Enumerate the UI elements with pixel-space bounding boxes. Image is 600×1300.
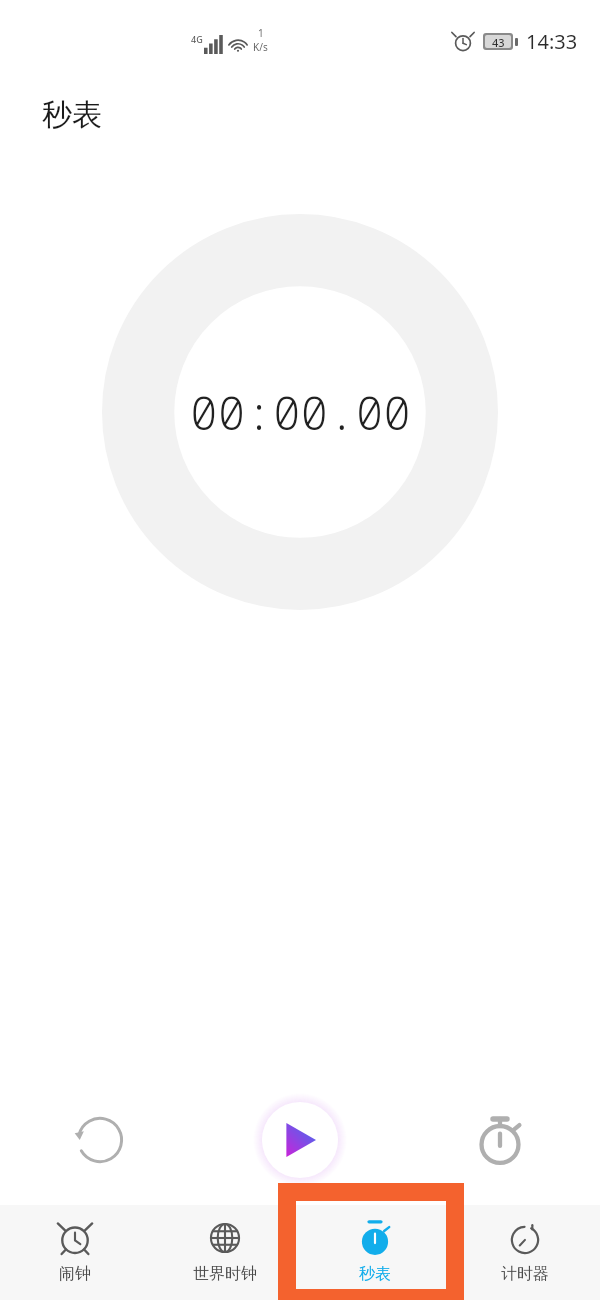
staticText: 闹钟	[59, 1264, 91, 1284]
staticText: 1	[258, 26, 264, 40]
button[interactable]: Reset	[0, 1085, 200, 1195]
staticText: K/s	[253, 40, 268, 54]
staticText: 00:00.00	[190, 381, 411, 444]
staticText: 世界时钟	[193, 1264, 257, 1284]
button[interactable]: 世界时钟	[150, 1205, 300, 1300]
staticText: 秒表	[42, 96, 102, 134]
button[interactable]: 闹钟	[0, 1205, 150, 1300]
staticText: 14:33	[526, 28, 578, 55]
button[interactable]: Lap	[400, 1085, 600, 1195]
staticText: 43	[492, 35, 505, 48]
button[interactable]: 秒表	[300, 1205, 450, 1300]
button[interactable]: 计时器	[450, 1205, 600, 1300]
button[interactable]: Start	[253, 1093, 347, 1187]
staticText: 4G	[191, 33, 203, 45]
staticText: 秒表	[359, 1264, 391, 1284]
staticText: 计时器	[501, 1264, 549, 1284]
